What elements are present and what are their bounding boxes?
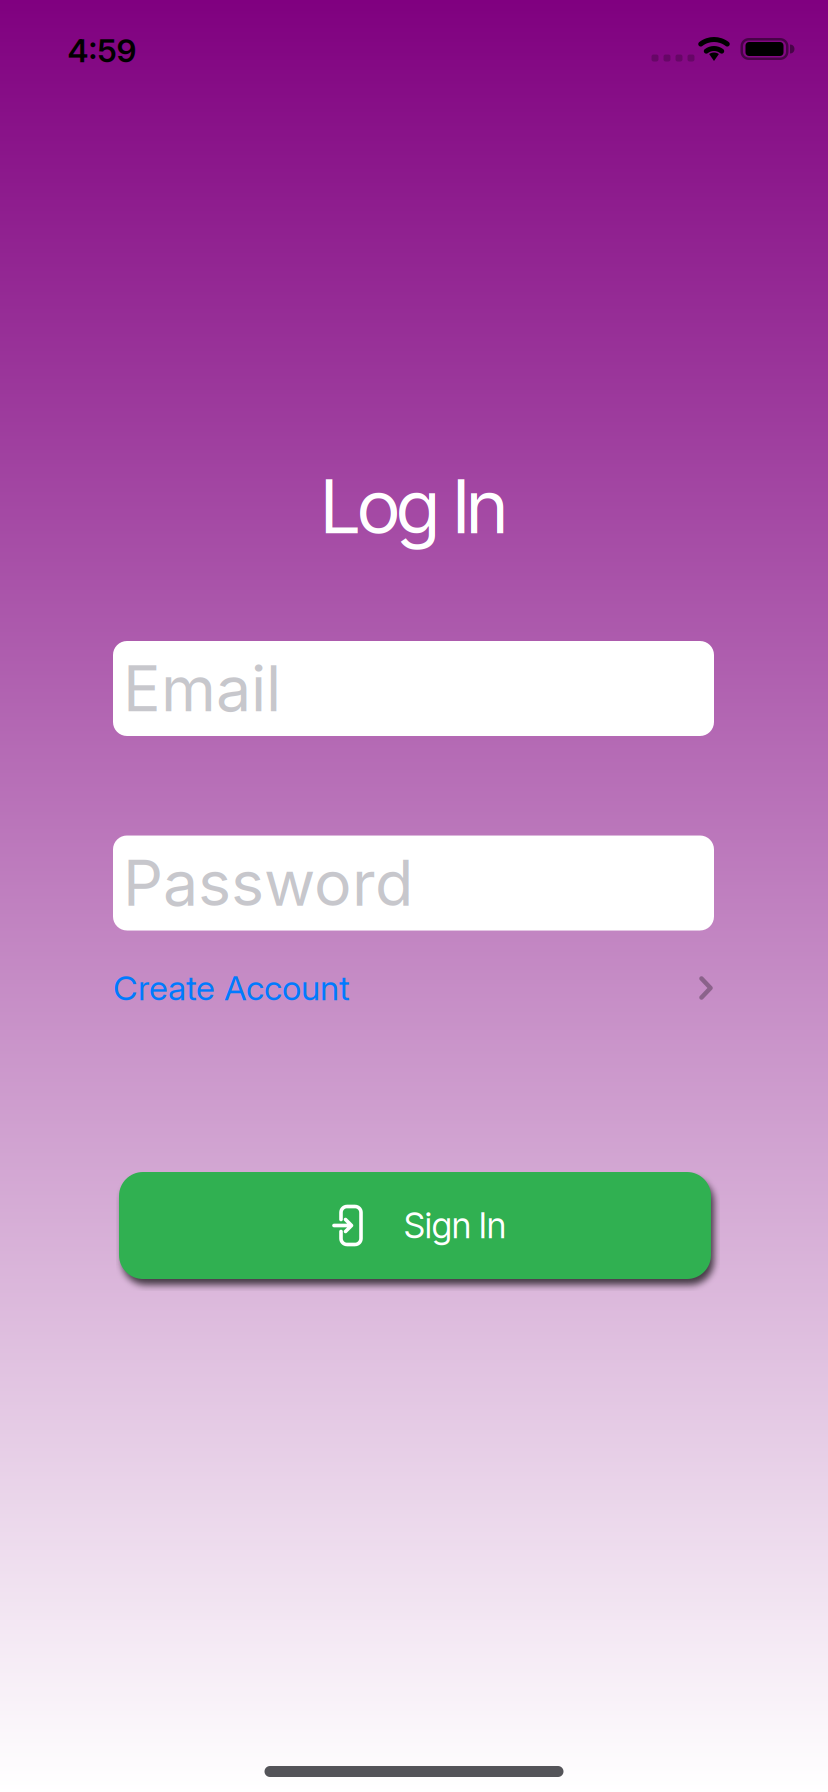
button[interactable]: Email [113, 641, 714, 736]
button[interactable]: Create Account [113, 958, 713, 1018]
staticText: Email [123, 651, 281, 726]
staticText: Create Account [113, 967, 350, 1008]
staticText: Password [123, 845, 413, 921]
button[interactable]: Sign In [119, 1172, 711, 1279]
staticText: Log In [321, 461, 507, 551]
staticText: Sign In [404, 1204, 506, 1247]
button[interactable]: Password [113, 835, 714, 930]
staticText: 4:59 [67, 31, 136, 70]
